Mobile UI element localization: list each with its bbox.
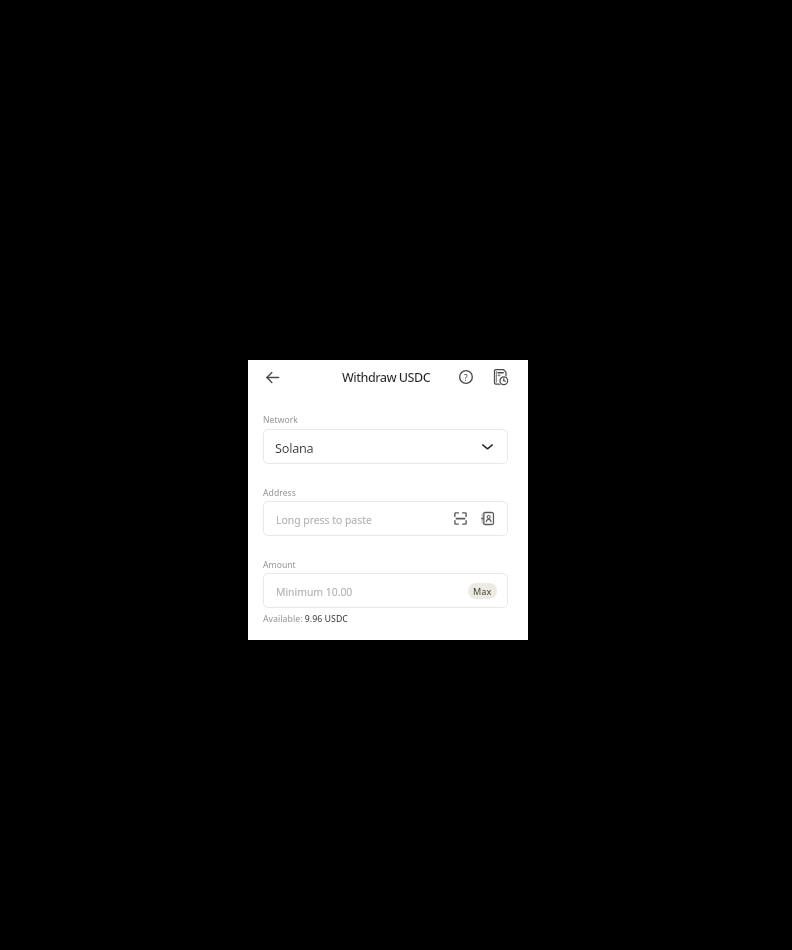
staticText: Max xyxy=(473,585,492,597)
button[interactable]: Minimum 10.00 xyxy=(263,573,508,608)
staticText: Withdraw USDC xyxy=(342,369,431,386)
staticText: Available: 9.96 USDC xyxy=(263,613,348,625)
staticText: Long press to paste xyxy=(276,513,372,527)
button[interactable]: Choose from contacts xyxy=(479,510,496,527)
staticText: ? xyxy=(464,372,468,383)
button[interactable]: Back xyxy=(260,365,284,389)
staticText: Address xyxy=(263,487,296,499)
button[interactable]: Solana xyxy=(263,429,508,464)
button[interactable]: Max xyxy=(468,583,497,599)
button[interactable]: Transaction history xyxy=(489,365,513,389)
staticText: Solana xyxy=(275,439,314,456)
staticText: Network xyxy=(263,414,298,426)
staticText: Minimum 10.00 xyxy=(276,585,353,599)
staticText: Amount xyxy=(263,559,296,571)
button[interactable]: Long press to paste xyxy=(263,501,508,536)
button[interactable]: Help xyxy=(454,365,478,389)
button[interactable]: Scan QR code xyxy=(452,510,469,527)
